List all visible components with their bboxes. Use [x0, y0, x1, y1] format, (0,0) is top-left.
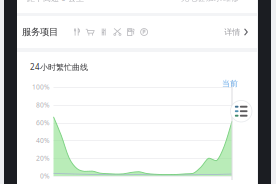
staticText: 60% [36, 118, 50, 127]
staticText: 80% [36, 100, 50, 109]
staticText: 24小时繁忙曲线 [30, 62, 88, 72]
staticText: 当前 [222, 79, 238, 88]
staticText: 0% [40, 172, 50, 180]
button[interactable]: 停车 [137, 22, 151, 42]
staticText: 加水 [206, 0, 222, 3]
staticText: 维修 [223, 0, 239, 3]
button[interactable]: 详情 [212, 22, 248, 42]
button[interactable]: 当前时段详情 [230, 100, 252, 122]
button[interactable]: 卫生间 [97, 22, 110, 42]
staticText: 详情 [224, 27, 240, 37]
staticText: 20% [36, 154, 50, 163]
button[interactable]: 餐饮 [70, 22, 84, 42]
button[interactable]: 理发 [111, 22, 124, 42]
staticText: 服务项目 [22, 26, 58, 38]
staticText: 40% [36, 136, 50, 145]
button[interactable]: 加油 [124, 22, 138, 42]
button[interactable]: 超市 [83, 22, 97, 42]
staticText: 100% [32, 83, 50, 91]
staticText: 距下高速 6 公里 [27, 0, 84, 3]
staticText: 充电桩 [181, 0, 205, 3]
